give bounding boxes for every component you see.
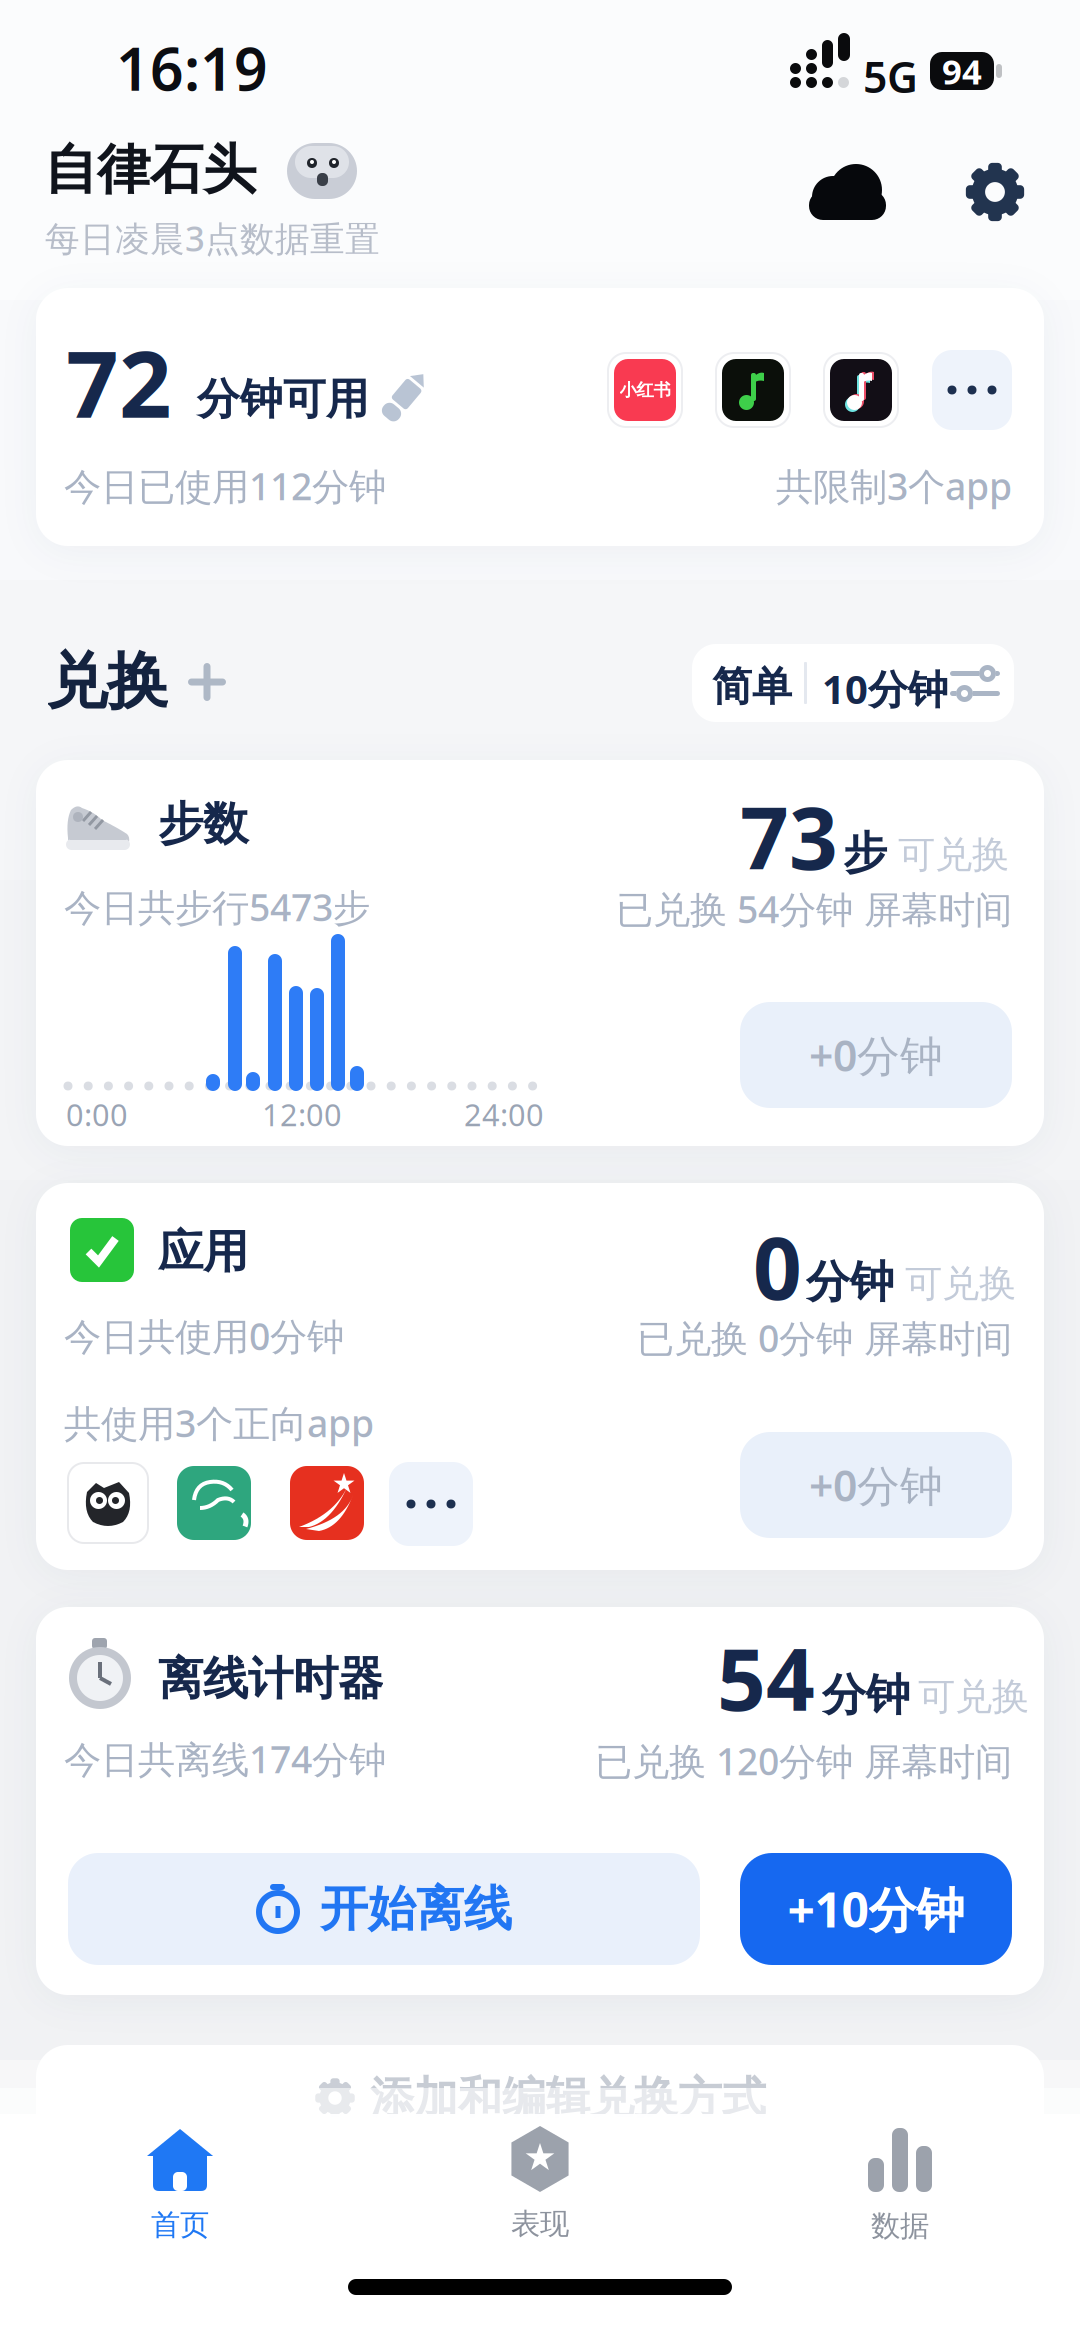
button[interactable]: QQ音乐 [715, 352, 791, 428]
staticText: +0分钟 [809, 1027, 943, 1083]
staticText: 73 [740, 780, 838, 893]
staticText: 每日凌晨3点数据重置 [45, 215, 380, 261]
staticText: 分钟 [822, 1668, 910, 1722]
button[interactable]: More apps [389, 1462, 473, 1546]
button[interactable]: 开始离线 [68, 1853, 700, 1965]
staticText: 可兑换 [918, 1674, 1029, 1720]
staticText: 添加和编辑兑换方式 [370, 2071, 766, 2125]
staticText: +0分钟 [809, 1457, 943, 1513]
staticText: 94 [942, 48, 982, 94]
staticText: 16:19 [116, 29, 268, 107]
staticText: 兑换 [46, 644, 168, 719]
staticText: 24:00 [464, 1094, 544, 1135]
button[interactable]: More apps [932, 350, 1012, 430]
staticText: 今日共离线174分钟 [64, 1734, 386, 1784]
button[interactable]: 添加兑换 [188, 663, 226, 701]
staticText: 5G [863, 48, 918, 105]
button[interactable]: 添加和编辑兑换方式 [36, 2045, 1044, 2337]
staticText: 今日共使用0分钟 [64, 1311, 344, 1361]
staticText: 0 [753, 1210, 802, 1323]
staticText: 首页 [151, 2207, 209, 2243]
staticText: 已兑换 120分钟 屏幕时间 [595, 1736, 1012, 1786]
staticText: 可兑换 [905, 1261, 1016, 1307]
staticText: 12:00 [262, 1094, 342, 1135]
button[interactable]: 学习强国 [290, 1466, 364, 1540]
staticText: 共限制3个app [776, 461, 1012, 511]
staticText: 分钟可用 [197, 373, 369, 425]
button[interactable]: 表现 [430, 2116, 650, 2252]
staticText: 0:00 [66, 1094, 128, 1135]
staticText: 72 [66, 321, 172, 443]
staticText: 简单 [712, 662, 792, 711]
button[interactable]: +0分钟 [740, 1432, 1012, 1538]
staticText: 步数 [158, 796, 248, 852]
staticText: 54 [717, 1621, 815, 1734]
button[interactable]: 小红书 [607, 352, 683, 428]
button[interactable]: 抖音 [823, 352, 899, 428]
staticText: 今日已使用112分钟 [64, 461, 386, 511]
button[interactable]: Settings [964, 161, 1026, 223]
button[interactable]: +10分钟 [740, 1853, 1012, 1965]
staticText: 开始离线 [320, 1879, 512, 1938]
staticText: 今日共步行5473步 [64, 882, 370, 932]
button[interactable]: 数据 [790, 2118, 1010, 2254]
button[interactable]: 绿色学习应用 [177, 1466, 251, 1540]
button[interactable]: 兑换设置 [692, 644, 1014, 722]
button[interactable]: +0分钟 [740, 1002, 1012, 1108]
staticText: 离线计时器 [158, 1651, 383, 1707]
button[interactable]: 首页 [70, 2118, 290, 2254]
staticText: 表现 [511, 2206, 569, 2242]
staticText: 已兑换 54分钟 屏幕时间 [616, 884, 1012, 934]
staticText: 自律石头 [44, 137, 256, 202]
staticText: 共使用3个正向app [64, 1398, 374, 1448]
staticText: 已兑换 0分钟 屏幕时间 [637, 1313, 1012, 1363]
staticText: 数据 [871, 2208, 929, 2244]
staticText: 10分钟 [822, 662, 948, 715]
button[interactable]: iCloud sync [808, 164, 888, 222]
staticText: +10分钟 [787, 1877, 964, 1941]
staticText: 步 [843, 826, 887, 880]
staticText: 分钟 [806, 1255, 894, 1309]
button[interactable]: 不背单词 [67, 1462, 149, 1544]
button[interactable]: Edit available minutes [382, 368, 428, 424]
staticText: 应用 [158, 1224, 248, 1280]
staticText: 可兑换 [898, 832, 1009, 878]
staticText: 小红书 [619, 379, 670, 401]
